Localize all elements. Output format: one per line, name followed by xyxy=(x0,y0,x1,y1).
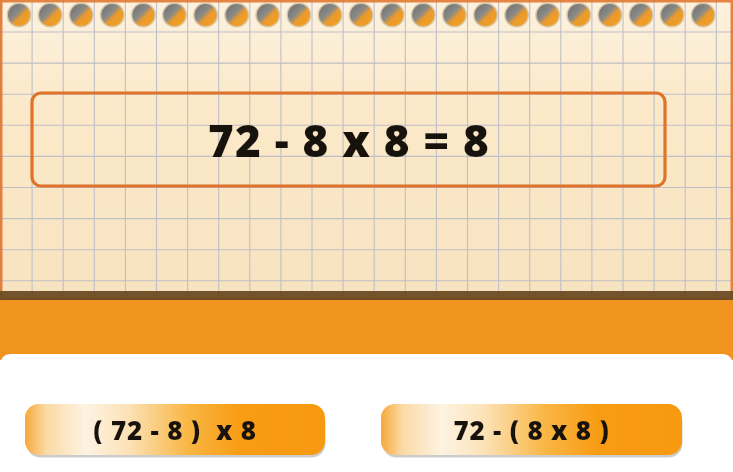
button[interactable]: 72 - ( 8 x 8 ) xyxy=(381,404,682,455)
staticText: ( 72 - 8 ) x 8 xyxy=(93,412,257,447)
staticText: 72 - ( 8 x 8 ) xyxy=(453,412,610,447)
staticText: 72 - 8 x 8 = 8 xyxy=(208,110,490,170)
button[interactable]: ( 72 - 8 ) x 8 xyxy=(25,404,325,455)
